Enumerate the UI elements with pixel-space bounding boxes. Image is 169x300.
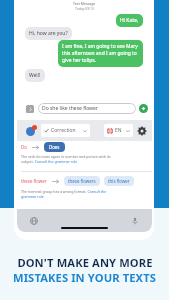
staticText: EN xyxy=(115,127,122,134)
staticText: Hi Kate, xyxy=(120,17,139,24)
button[interactable]: Apps xyxy=(26,105,34,113)
staticText: I am fine, I am going to see Mary this a… xyxy=(62,43,139,64)
button[interactable]: Language xyxy=(30,217,38,225)
button[interactable]: Does xyxy=(49,144,60,150)
button[interactable]: these flowers xyxy=(68,178,96,184)
staticText: DON'T MAKE ANY MORE xyxy=(17,255,153,270)
button[interactable]: Voice input xyxy=(131,217,139,225)
button[interactable]: Settings xyxy=(137,126,147,136)
staticText: Correction xyxy=(51,127,76,134)
staticText: this flower xyxy=(108,178,130,184)
staticText: Do she like these flower xyxy=(42,105,98,112)
staticText: Text Message xyxy=(73,1,96,6)
button[interactable]: EN xyxy=(107,127,130,134)
staticText: Does xyxy=(49,144,60,150)
button[interactable]: Hi Kate, xyxy=(120,17,139,24)
button[interactable]: Do she like these flower xyxy=(38,103,136,114)
button[interactable]: Hi, how are you? xyxy=(29,30,68,37)
button[interactable]: I am fine, I am going to see Mary this a… xyxy=(62,43,139,64)
staticText: Do xyxy=(21,144,27,150)
staticText: these flowers xyxy=(68,178,96,184)
staticText: Well! xyxy=(29,72,41,79)
button[interactable]: this flower xyxy=(108,178,130,184)
staticText: Today 09:13 xyxy=(75,6,94,11)
staticText: Hi, how are you? xyxy=(29,30,68,37)
button[interactable]: Correction xyxy=(44,127,87,134)
button[interactable]: Send xyxy=(139,104,148,113)
staticText: these flower xyxy=(21,178,47,184)
staticText: MISTAKES IN YOUR TEXTS xyxy=(13,270,156,285)
button[interactable]: Well! xyxy=(29,72,41,79)
staticText: The nominal group has a wrong format. Co… xyxy=(21,189,116,199)
staticText: The verb do must agree in number and per… xyxy=(21,154,116,164)
